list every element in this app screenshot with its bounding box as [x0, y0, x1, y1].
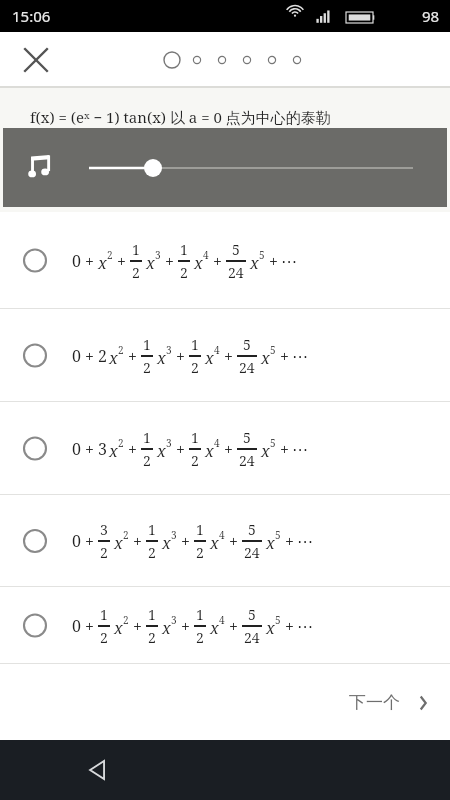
staticText: 2 — [196, 543, 204, 562]
staticText: + — [229, 530, 238, 552]
staticText: 1 — [143, 335, 151, 354]
staticText: x — [146, 252, 155, 274]
staticText: + — [213, 250, 222, 272]
staticText: x — [162, 617, 171, 639]
button[interactable]: 0 — [0, 495, 450, 587]
staticText: 0 — [72, 438, 81, 460]
staticText: 1 — [191, 335, 199, 354]
staticText: 1 — [196, 520, 204, 539]
staticText: 2 — [123, 613, 129, 627]
staticText: x — [162, 532, 171, 554]
staticText: + — [85, 530, 94, 552]
staticText: x — [266, 617, 275, 639]
staticText: + — [280, 345, 289, 367]
button[interactable]: 0 — [0, 309, 450, 402]
staticText: + — [128, 438, 137, 460]
other: Play audio — [29, 155, 55, 181]
staticText: + — [181, 615, 190, 637]
staticText: 5 — [270, 343, 276, 357]
staticText: 5 — [243, 335, 251, 354]
staticText: 2 — [196, 628, 204, 647]
staticText: 5 — [275, 613, 281, 627]
staticText: 4 — [219, 528, 225, 542]
staticText: 5 — [259, 248, 265, 262]
staticText: 3 — [100, 520, 108, 539]
staticText: x — [98, 252, 107, 274]
staticText: + — [176, 345, 185, 367]
staticText: 1 — [148, 520, 156, 539]
staticText: 4 — [214, 436, 220, 450]
staticText: 24 — [239, 358, 255, 377]
button[interactable]: 下一个 — [349, 692, 432, 713]
staticText: 5 — [248, 605, 256, 624]
staticText: 5 — [275, 528, 281, 542]
staticText: 5 — [232, 240, 240, 259]
staticText: x — [205, 347, 214, 369]
staticText: 2 — [118, 343, 124, 357]
staticText: + — [285, 530, 294, 552]
staticText: 0 — [72, 530, 81, 552]
staticText: 24 — [244, 543, 260, 562]
staticText: 1 — [100, 605, 108, 624]
button[interactable]: Back — [76, 748, 120, 792]
staticText: 3 — [171, 613, 177, 627]
staticText: + — [269, 250, 278, 272]
staticText: 3 — [166, 343, 172, 357]
staticText: + — [85, 438, 94, 460]
staticText: + — [181, 530, 190, 552]
staticText: + — [176, 438, 185, 460]
staticText: 2 — [98, 345, 107, 367]
staticText: 1 — [180, 240, 188, 259]
button[interactable]: 0 — [0, 212, 450, 309]
staticText: x — [250, 252, 259, 274]
staticText: f(x) = (eˣ − 1) tan(x) 以 a = 0 点为中心的泰勒 — [30, 107, 331, 127]
staticText: 4 — [203, 248, 209, 262]
staticText: ⋯ — [292, 347, 308, 366]
staticText: + — [229, 615, 238, 637]
staticText: + — [133, 615, 142, 637]
button[interactable]: Play audio — [3, 128, 447, 207]
staticText: ⋯ — [297, 532, 313, 551]
staticText: 2 — [100, 628, 108, 647]
staticText: + — [117, 250, 126, 272]
staticText: + — [133, 530, 142, 552]
staticText: 2 — [118, 436, 124, 450]
staticText: 2 — [191, 358, 199, 377]
button[interactable]: Close — [14, 38, 58, 82]
staticText: 98 — [422, 6, 440, 26]
staticText: x — [205, 440, 214, 462]
staticText: 24 — [239, 451, 255, 470]
staticText: x — [194, 252, 203, 274]
staticText: + — [224, 438, 233, 460]
staticText: 0 — [72, 345, 81, 367]
staticText: 2 — [180, 263, 188, 282]
staticText: 2 — [100, 543, 108, 562]
staticText: 0 — [72, 615, 81, 637]
staticText: 3 — [166, 436, 172, 450]
staticText: 1 — [132, 240, 140, 259]
staticText: 级数的前几项是什么? — [30, 127, 172, 147]
staticText: 1 — [148, 605, 156, 624]
staticText: 1 — [191, 428, 199, 447]
staticText: x — [266, 532, 275, 554]
staticText: 下一个 — [349, 692, 400, 713]
staticText: x — [210, 532, 219, 554]
staticText: + — [85, 250, 94, 272]
staticText: + — [224, 345, 233, 367]
staticText: x — [109, 347, 118, 369]
staticText: x — [157, 347, 166, 369]
button[interactable]: 0 — [0, 587, 450, 664]
staticText: 15:06 — [12, 6, 51, 26]
staticText: 24 — [244, 628, 260, 647]
staticText: ⋯ — [281, 252, 297, 271]
staticText: 5 — [248, 520, 256, 539]
staticText: x — [109, 440, 118, 462]
staticText: x — [261, 440, 270, 462]
staticText: 1 — [196, 605, 204, 624]
staticText: 4 — [214, 343, 220, 357]
staticText: 2 — [143, 358, 151, 377]
staticText: 5 — [270, 436, 276, 450]
staticText: 2 — [148, 628, 156, 647]
button[interactable]: 0 — [0, 402, 450, 495]
staticText: + — [280, 438, 289, 460]
